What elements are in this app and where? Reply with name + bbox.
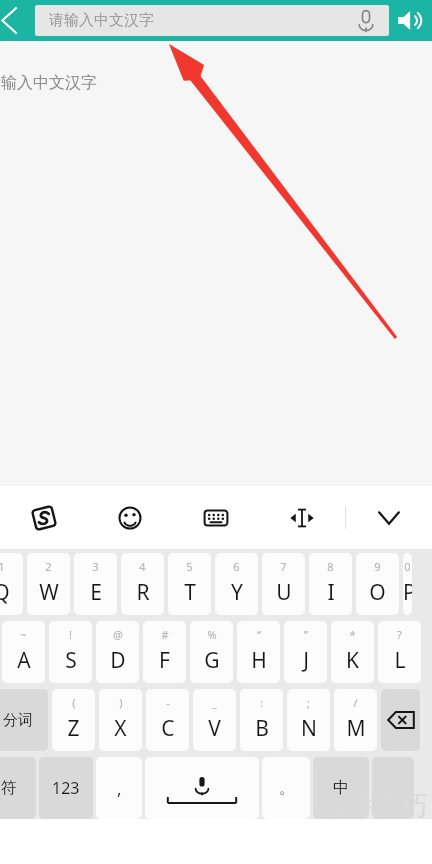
- button[interactable]: 符: [0, 757, 36, 819]
- button[interactable]: #: [143, 621, 186, 683]
- staticText: !: [69, 627, 72, 642]
- staticText: ”: [304, 627, 308, 642]
- button[interactable]: -: [146, 689, 189, 751]
- button[interactable]: 6: [215, 553, 258, 615]
- staticText: 软件技巧: [320, 789, 428, 823]
- button[interactable]: _: [193, 689, 236, 751]
- staticText: Z: [67, 714, 80, 743]
- staticText: V: [208, 714, 221, 743]
- staticText: K: [346, 646, 359, 675]
- staticText: Y: [231, 578, 243, 607]
- button[interactable]: Move cursor: [259, 486, 345, 549]
- button[interactable]: ”: [284, 621, 327, 683]
- staticText: ~: [20, 627, 27, 642]
- staticText: 7: [280, 559, 287, 574]
- button[interactable]: ,: [96, 757, 142, 819]
- button[interactable]: Sogou input method: [0, 486, 87, 549]
- staticText: I: [327, 578, 335, 607]
- button[interactable]: 3: [74, 553, 117, 615]
- staticText: ): [119, 695, 123, 710]
- button[interactable]: Backspace: [381, 689, 420, 751]
- staticText: #: [161, 627, 169, 642]
- staticText: M: [346, 714, 366, 743]
- button[interactable]: ~: [2, 621, 45, 683]
- button[interactable]: 。: [262, 757, 310, 819]
- button[interactable]: ?: [378, 621, 421, 683]
- staticText: 3: [92, 559, 99, 574]
- button[interactable]: /: [334, 689, 377, 751]
- button[interactable]: %: [190, 621, 233, 683]
- staticText: /: [353, 695, 358, 710]
- staticText: N: [301, 714, 317, 743]
- button[interactable]: (: [52, 689, 95, 751]
- button[interactable]: Keyboard layout: [173, 486, 259, 549]
- button[interactable]: 123: [39, 757, 93, 819]
- staticText: -: [166, 695, 170, 710]
- button[interactable]: 4: [121, 553, 164, 615]
- button[interactable]: 中: [313, 757, 369, 819]
- button[interactable]: 请输入中文汉字: [35, 5, 389, 36]
- button[interactable]: Sound: [390, 0, 432, 41]
- staticText: 中: [333, 778, 349, 798]
- staticText: T: [184, 578, 196, 607]
- staticText: “: [257, 627, 261, 642]
- staticText: @: [113, 627, 123, 642]
- staticText: 6: [233, 559, 240, 574]
- staticText: 123: [52, 777, 80, 799]
- staticText: 9: [374, 559, 381, 574]
- button[interactable]: !: [49, 621, 92, 683]
- staticText: ,: [117, 777, 122, 800]
- staticText: R: [136, 578, 150, 607]
- staticText: C: [161, 714, 175, 743]
- staticText: 8: [327, 559, 334, 574]
- button[interactable]: Back: [0, 0, 32, 41]
- staticText: S: [65, 646, 77, 675]
- button[interactable]: 1: [0, 553, 23, 615]
- staticText: O: [369, 578, 386, 607]
- staticText: X: [114, 714, 127, 743]
- staticText: U: [276, 578, 292, 607]
- button[interactable]: *: [331, 621, 374, 683]
- staticText: 符: [1, 778, 17, 798]
- button[interactable]: Voice input: [353, 8, 379, 34]
- button[interactable]: Hide keyboard: [346, 486, 432, 549]
- staticText: G: [204, 646, 220, 675]
- staticText: E: [90, 578, 102, 607]
- button[interactable]: @: [96, 621, 139, 683]
- staticText: 5: [186, 559, 193, 574]
- staticText: :: [260, 695, 263, 710]
- staticText: %: [207, 627, 217, 642]
- staticText: 1: [0, 559, 5, 574]
- button[interactable]: 2: [27, 553, 70, 615]
- button[interactable]: Emoji: [87, 486, 173, 549]
- staticText: 0: [404, 559, 411, 574]
- staticText: 请输入中文汉字: [0, 73, 97, 93]
- button[interactable]: ): [99, 689, 142, 751]
- staticText: P: [403, 578, 412, 607]
- button[interactable]: 分词: [0, 689, 48, 751]
- staticText: 分词: [3, 711, 33, 730]
- staticText: H: [251, 646, 267, 675]
- button[interactable]: 8: [309, 553, 352, 615]
- staticText: 。: [279, 779, 294, 798]
- staticText: *: [349, 627, 356, 642]
- button[interactable]: ;: [287, 689, 330, 751]
- staticText: 4: [139, 559, 146, 574]
- staticText: (: [72, 695, 76, 710]
- staticText: B: [255, 714, 269, 743]
- button[interactable]: 7: [262, 553, 305, 615]
- staticText: 2: [45, 559, 52, 574]
- button[interactable]: Space and voice input: [145, 757, 259, 819]
- staticText: F: [159, 646, 170, 675]
- staticText: ;: [307, 695, 310, 710]
- button[interactable]: 5: [168, 553, 211, 615]
- staticText: W: [39, 578, 59, 607]
- staticText: L: [394, 646, 406, 675]
- button[interactable]: :: [240, 689, 283, 751]
- staticText: D: [110, 646, 126, 675]
- staticText: _: [212, 695, 217, 710]
- button[interactable]: 0: [403, 553, 412, 615]
- button[interactable]: 9: [356, 553, 399, 615]
- button[interactable]: “: [237, 621, 280, 683]
